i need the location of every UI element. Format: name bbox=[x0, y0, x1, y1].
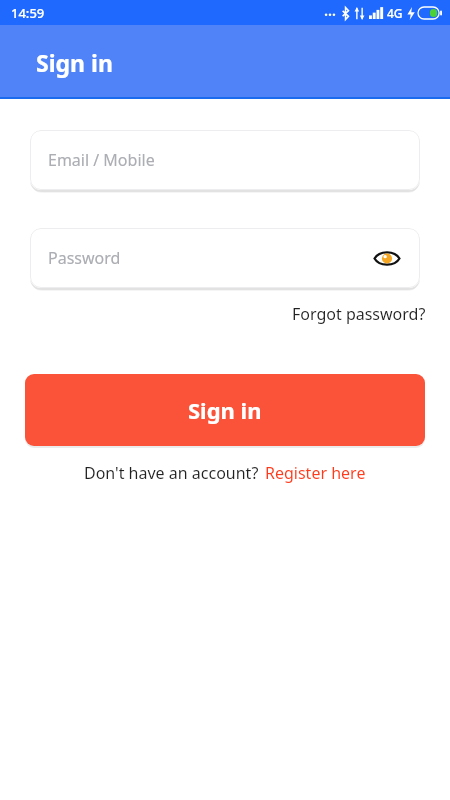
staticText: 4G bbox=[387, 5, 403, 21]
button[interactable]: Forgot password? bbox=[292, 301, 450, 327]
button[interactable]: Register here bbox=[265, 462, 366, 484]
staticText: 14:59 bbox=[11, 4, 45, 22]
staticText: Register here bbox=[265, 462, 366, 484]
button[interactable]: Email / Mobile bbox=[30, 130, 420, 190]
staticText: Sign in bbox=[36, 47, 113, 78]
staticText: Password bbox=[48, 247, 370, 269]
button[interactable]: Show password bbox=[370, 241, 404, 275]
staticText: Don't have an account? bbox=[84, 462, 259, 484]
button[interactable]: Sign in bbox=[25, 374, 425, 446]
button[interactable]: Password bbox=[30, 228, 420, 288]
staticText: Email / Mobile bbox=[48, 149, 404, 171]
staticText: Sign in bbox=[188, 395, 262, 425]
staticText: Forgot password? bbox=[292, 303, 426, 325]
